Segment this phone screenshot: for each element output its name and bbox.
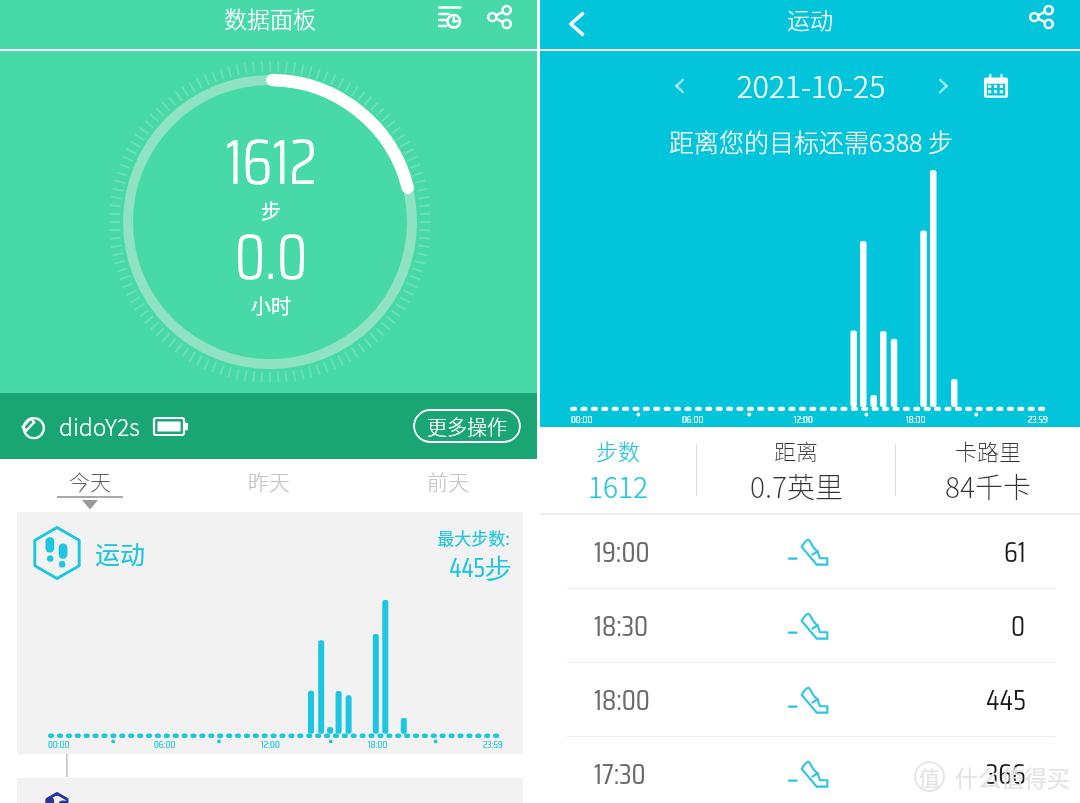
staticText: 1612: [71, 112, 471, 211]
staticText: 12:00: [794, 412, 813, 424]
button[interactable]: 17:30: [540, 737, 1080, 803]
staticText: 18:00: [906, 412, 926, 424]
staticText: 最大步数:: [317, 525, 510, 550]
staticText: didoY2s: [59, 409, 140, 442]
button[interactable]: 前天: [358, 459, 537, 512]
button[interactable]: 更多操作: [413, 409, 521, 443]
staticText: 19:00: [594, 529, 650, 575]
staticText: 数据面板: [70, 1, 470, 34]
staticText: 23:59: [483, 737, 503, 749]
button[interactable]: 步数: [540, 434, 696, 507]
staticText: 运动: [610, 2, 1010, 35]
staticText: 今天: [69, 466, 111, 496]
button[interactable]: Share: [1025, 1, 1057, 33]
staticText: 00:00: [48, 737, 70, 749]
staticText: 61: [1004, 529, 1026, 575]
staticText: 1612: [588, 466, 648, 507]
staticText: 0: [1011, 603, 1026, 649]
staticText: 步数: [596, 434, 641, 466]
staticText: 更多操作: [427, 412, 507, 441]
staticText: 昨天: [248, 466, 290, 496]
staticText: 23:59: [1028, 412, 1048, 424]
staticText: 步: [71, 196, 471, 225]
button[interactable]: History: [434, 1, 466, 33]
staticText: 18:00: [368, 737, 388, 749]
staticText: 445: [986, 677, 1026, 723]
staticText: 84千卡: [945, 466, 1031, 507]
staticText: 17:30: [594, 751, 646, 797]
staticText: 小时: [71, 291, 471, 320]
staticText: 18:30: [594, 603, 649, 649]
button[interactable]: Calendar: [978, 68, 1014, 104]
staticText: 12:00: [261, 737, 280, 749]
staticText: 值: [919, 762, 940, 792]
staticText: 卡路里: [955, 434, 1022, 466]
staticText: 2021-10-25: [611, 63, 1011, 106]
staticText: 06:00: [154, 737, 176, 749]
staticText: 366: [986, 751, 1026, 797]
button[interactable]: 距离: [697, 434, 895, 507]
staticText: 18:00: [594, 677, 650, 723]
button[interactable]: Next day: [927, 70, 959, 102]
button[interactable]: Back: [560, 7, 594, 41]
staticText: 06:00: [682, 412, 704, 424]
button[interactable]: 今天: [0, 459, 179, 512]
staticText: 运动: [95, 535, 146, 571]
button[interactable]: 昨天: [179, 459, 358, 512]
staticText: 距离: [774, 434, 819, 466]
button[interactable]: 19:00: [540, 515, 1080, 588]
staticText: 0.7英里: [750, 466, 843, 507]
staticText: 距离您的目标还需6388 步: [611, 123, 1011, 159]
staticText: 前天: [427, 466, 469, 496]
button[interactable]: Previous day: [664, 70, 696, 102]
button[interactable]: Share: [483, 1, 515, 33]
staticText: 00:00: [571, 412, 593, 424]
staticText: 什么值得买: [955, 760, 1070, 793]
button[interactable]: 18:00: [540, 663, 1080, 736]
staticText: 0.0: [71, 207, 471, 306]
button[interactable]: 18:30: [540, 589, 1080, 662]
button[interactable]: [17, 778, 523, 803]
staticText: 445步: [317, 547, 511, 588]
button[interactable]: 卡路里: [896, 434, 1080, 507]
button[interactable]: 运动: [17, 512, 523, 754]
